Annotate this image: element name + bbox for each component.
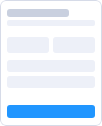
button[interactable]: Title [7, 9, 69, 17]
button[interactable]: Continue [7, 105, 95, 118]
